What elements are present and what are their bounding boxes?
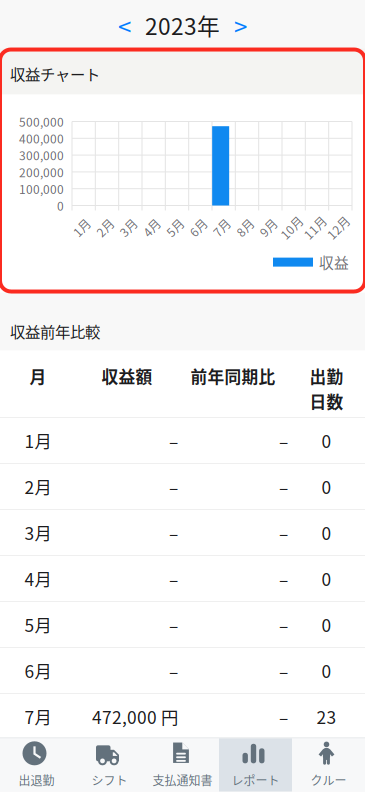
button[interactable]: クルー	[292, 738, 365, 791]
staticText: 6月	[24, 658, 51, 683]
staticText: 0	[321, 658, 331, 683]
staticText: 1月	[72, 219, 91, 236]
staticText: 支払通知書	[152, 771, 212, 789]
staticText: 400,000	[19, 130, 64, 147]
button[interactable]: <	[102, 8, 146, 42]
staticText: –	[279, 428, 288, 453]
staticText: 日数	[309, 389, 343, 413]
staticText: 2月	[24, 474, 51, 499]
staticText: クルー	[310, 771, 346, 789]
staticText: 100,000	[19, 180, 64, 197]
staticText: –	[169, 428, 178, 453]
staticText: 0	[321, 612, 331, 637]
staticText: –	[279, 658, 288, 683]
staticText: –	[169, 566, 178, 591]
staticText: 12月	[325, 219, 351, 236]
staticText: >	[234, 8, 247, 42]
staticText: 出退勤	[18, 771, 54, 789]
staticText: 5月	[24, 612, 51, 637]
staticText: 472,000 円	[92, 704, 178, 729]
staticText: 収益額	[101, 364, 152, 388]
staticText: –	[169, 658, 178, 683]
staticText: 出勤	[309, 364, 343, 388]
staticText: レポート	[231, 771, 279, 789]
staticText: 2月	[95, 219, 114, 236]
staticText: 4月	[24, 566, 51, 591]
staticText: 7月	[24, 704, 51, 729]
staticText: 3月	[24, 520, 51, 545]
staticText: <	[118, 8, 131, 42]
staticText: 7月	[212, 219, 231, 236]
button[interactable]: 支払通知書	[146, 738, 219, 791]
button[interactable]: 出退勤	[0, 738, 73, 791]
staticText: –	[279, 612, 288, 637]
staticText: 23	[316, 704, 336, 729]
button[interactable]: レポート	[219, 738, 292, 791]
staticText: 3月	[119, 219, 138, 236]
staticText: 6月	[189, 219, 208, 236]
staticText: 9月	[259, 219, 278, 236]
button[interactable]: >	[218, 8, 262, 42]
staticText: 収益	[319, 251, 349, 273]
staticText: 500,000	[19, 113, 64, 130]
staticText: 200,000	[19, 163, 64, 181]
staticText: 0	[321, 474, 331, 499]
staticText: 0	[321, 566, 331, 591]
staticText: 10月	[279, 219, 305, 236]
staticText: –	[169, 474, 178, 499]
staticText: 5月	[165, 219, 184, 236]
staticText: 1月	[24, 428, 51, 453]
staticText: 300,000	[19, 146, 64, 164]
button[interactable]: シフト	[73, 738, 146, 791]
staticText: –	[279, 566, 288, 591]
staticText: 0	[57, 197, 64, 214]
staticText: 11月	[302, 219, 328, 236]
staticText: –	[169, 612, 178, 637]
staticText: 前年同期比	[190, 364, 275, 388]
staticText: シフト	[91, 771, 127, 789]
staticText: 8月	[235, 219, 254, 236]
staticText: –	[279, 520, 288, 545]
staticText: 4月	[142, 219, 161, 236]
staticText: 月	[29, 364, 46, 388]
staticText: 2023年	[145, 9, 220, 41]
staticText: 0	[321, 428, 331, 453]
staticText: 収益前年比較	[10, 320, 100, 342]
staticText: 0	[321, 520, 331, 545]
staticText: –	[279, 704, 288, 729]
staticText: –	[169, 520, 178, 545]
staticText: –	[279, 474, 288, 499]
staticText: 収益チャート	[10, 62, 100, 85]
